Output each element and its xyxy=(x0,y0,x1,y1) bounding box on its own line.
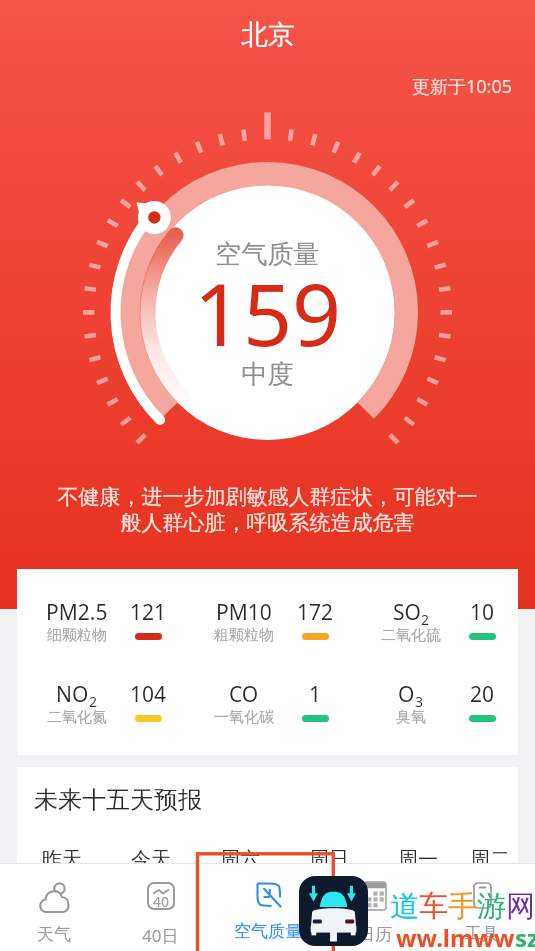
staticText: 更新于10:05 xyxy=(0,74,512,99)
staticText: 周六 xyxy=(220,847,260,872)
other: Weather xyxy=(39,882,70,910)
staticText: 昨天 xyxy=(42,847,82,872)
staticText: 10 xyxy=(470,598,495,627)
staticText: 中度 xyxy=(0,358,535,391)
staticText: SO xyxy=(393,598,421,627)
staticText: 北京 xyxy=(241,18,295,52)
staticText: 40日 xyxy=(142,924,179,947)
staticText: 粗颗粒物 xyxy=(214,626,274,645)
staticText: 工具 xyxy=(465,923,499,944)
button[interactable]: Tools xyxy=(428,863,535,951)
staticText: 日历 xyxy=(358,924,392,945)
staticText: 天气 xyxy=(37,924,71,945)
staticText: 121 xyxy=(130,598,167,627)
staticText: 二氧化硫 xyxy=(381,626,441,645)
staticText: 159 xyxy=(0,254,535,371)
staticText: 2 xyxy=(421,610,430,629)
staticText: 二氧化氮 xyxy=(47,708,107,727)
button[interactable]: Weather xyxy=(0,863,107,951)
staticText: 一氧化碳 xyxy=(214,708,274,727)
staticText: 臭氧 xyxy=(396,708,426,727)
other: Tools xyxy=(473,882,492,909)
staticText: 2 xyxy=(89,692,98,711)
staticText: 空气质量 xyxy=(0,238,535,271)
staticText: 道 xyxy=(390,888,419,925)
other: 40 day forecast xyxy=(147,882,175,910)
staticText: 40 xyxy=(153,892,170,911)
other: Air quality xyxy=(256,882,281,907)
staticText: 车 xyxy=(419,888,448,925)
staticText: 游 xyxy=(477,888,506,925)
staticText: 20 xyxy=(470,680,495,709)
staticText: PM2.5 xyxy=(46,598,108,627)
staticText: 网 xyxy=(506,888,535,925)
staticText: 不健康，进一步加剧敏感人群症状，可能对一般人群心脏，呼吸系统造成危害 xyxy=(55,484,480,536)
staticText: 今天 xyxy=(131,847,171,872)
other: Calendar xyxy=(364,882,386,910)
staticText: O xyxy=(398,680,415,709)
staticText: 周一 xyxy=(398,847,438,872)
staticText: 172 xyxy=(297,598,334,627)
staticText: 1 xyxy=(309,680,322,709)
staticText: 104 xyxy=(130,680,167,709)
staticText: 未来十五天预报 xyxy=(34,785,202,815)
staticText: sz xyxy=(515,921,535,951)
staticText: NO xyxy=(56,680,89,709)
staticText: 周二 xyxy=(470,847,510,872)
staticText: ww.lmww xyxy=(396,921,515,951)
button[interactable]: Calendar xyxy=(321,863,428,951)
staticText: 3 xyxy=(415,692,424,711)
staticText: 手 xyxy=(448,888,477,925)
button[interactable]: 40 day forecast xyxy=(107,863,214,951)
staticText: CO xyxy=(229,680,259,709)
staticText: PM10 xyxy=(216,598,272,627)
button[interactable]: Air quality xyxy=(214,863,321,951)
staticText: 空气质量 xyxy=(234,921,302,942)
staticText: 细颗粒物 xyxy=(47,626,107,645)
staticText: 周日 xyxy=(309,847,349,872)
